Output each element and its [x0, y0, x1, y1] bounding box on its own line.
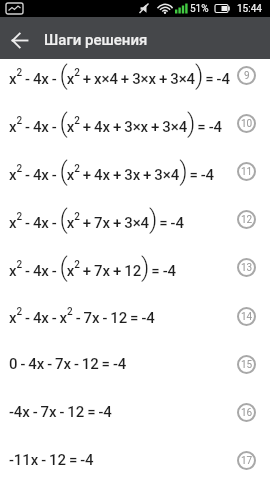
staticText: x2 - 4x - (x2 + 4x + 3×x + 3×4) = -4	[9, 108, 222, 138]
staticText: -11x - 12 = -4	[9, 451, 94, 469]
staticText: 15	[241, 359, 253, 371]
staticText: x2 - 4x - (x2 + x×4 + 3×x + 3×4) = -4	[9, 60, 230, 90]
staticText: 12	[241, 214, 253, 226]
staticText: x2 - 4x - (x2 + 7x + 3×4) = -4	[9, 204, 184, 234]
staticText: -4x - 7x - 12 = -4	[9, 403, 112, 421]
staticText: 0 - 4x - 7x - 12 = -4	[9, 355, 127, 373]
button[interactable]: 0 - 4x - 7x - 12 = -4	[0, 340, 270, 388]
button[interactable]: -11x - 12 = -4	[0, 436, 270, 480]
staticText: x2 - 4x - x2 - 7x - 12 = -4	[9, 306, 155, 327]
staticText: 51%	[190, 3, 209, 15]
button[interactable]: Шаги решения	[0, 17, 148, 59]
button[interactable]: -4x - 7x - 12 = -4	[0, 388, 270, 436]
button[interactable]: x2 - 4x - (x2 + 7x + 12) = -4	[0, 243, 270, 291]
button[interactable]: x2 - 4x - (x2 + 7x + 3×4) = -4	[0, 195, 270, 243]
staticText: 11	[241, 166, 253, 178]
staticText: 17	[241, 455, 253, 467]
staticText: 15:44	[237, 3, 262, 15]
staticText: 10	[241, 118, 253, 130]
staticText: 13	[241, 262, 253, 274]
staticText: 16	[241, 407, 253, 419]
staticText: x2 - 4x - (x2 + 7x + 12) = -4	[9, 252, 176, 282]
button[interactable]: x2 - 4x - x2 - 7x - 12 = -4	[0, 292, 270, 340]
staticText: Шаги решения	[44, 31, 148, 49]
button[interactable]: x2 - 4x - (x2 + 4x + 3x + 3×4) = -4	[0, 147, 270, 195]
staticText: 9	[244, 70, 250, 82]
staticText: x2 - 4x - (x2 + 4x + 3x + 3×4) = -4	[9, 156, 215, 186]
button[interactable]: x2 - 4x - (x2 + 4x + 3×x + 3×4) = -4	[0, 99, 270, 147]
button[interactable]: x2 - 4x - (x2 + x×4 + 3×x + 3×4) = -4	[0, 59, 270, 99]
staticText: 14	[241, 311, 253, 323]
